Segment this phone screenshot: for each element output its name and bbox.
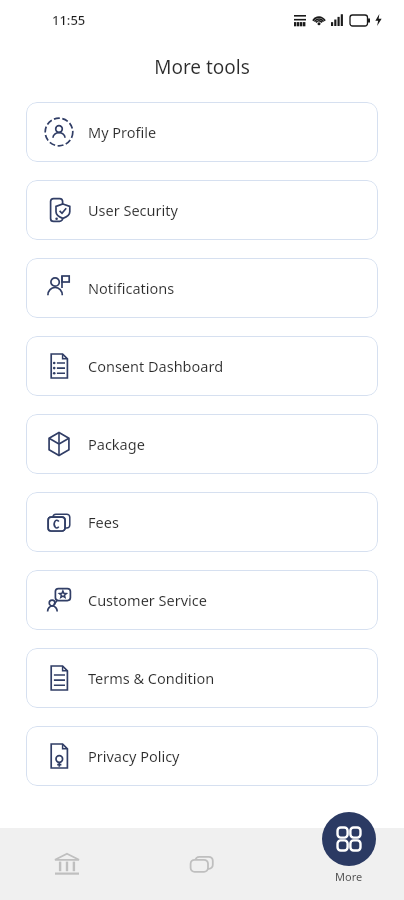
staticText: Terms & Condition <box>88 668 215 688</box>
button[interactable]: Accounts <box>0 828 134 900</box>
button[interactable]: My Profile <box>26 102 378 162</box>
staticText: Notifications <box>88 278 175 298</box>
staticText: More <box>335 869 363 884</box>
button[interactable]: Privacy Policy <box>26 726 378 786</box>
staticText: Fees <box>88 512 119 532</box>
staticText: Customer Service <box>88 590 207 610</box>
staticText: User Security <box>88 200 178 220</box>
staticText: Consent Dashboard <box>88 356 224 376</box>
button[interactable]: Fees <box>26 492 378 552</box>
button[interactable]: More <box>322 812 376 884</box>
button[interactable]: Package <box>26 414 378 474</box>
button[interactable]: User Security <box>26 180 378 240</box>
button[interactable]: Cards <box>134 828 269 900</box>
staticText: Privacy Policy <box>88 746 180 766</box>
staticText: My Profile <box>88 122 157 142</box>
staticText: Package <box>88 434 145 454</box>
button[interactable]: Terms & Condition <box>26 648 378 708</box>
staticText: More tools <box>0 54 404 80</box>
button[interactable]: Customer Service <box>26 570 378 630</box>
button[interactable]: Consent Dashboard <box>26 336 378 396</box>
staticText: 11:55 <box>52 11 86 29</box>
button[interactable]: Notifications <box>26 258 378 318</box>
